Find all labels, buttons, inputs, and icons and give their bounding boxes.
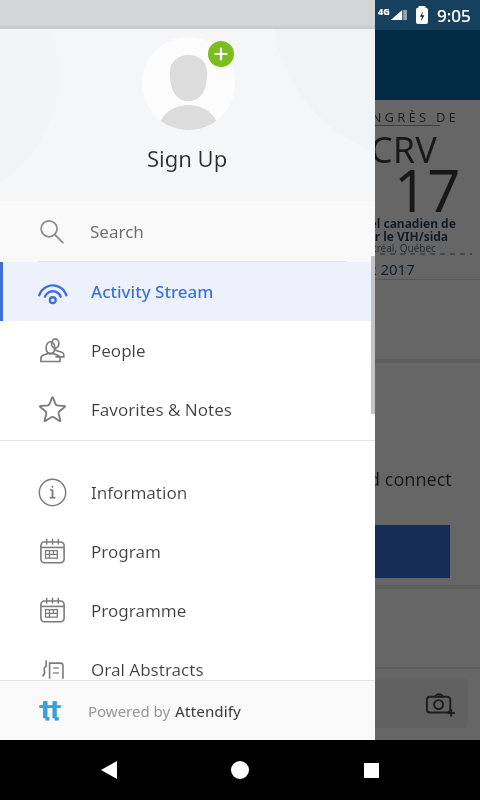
staticText: Oral Abstracts [91, 658, 204, 681]
button[interactable]: Sign Up [139, 140, 236, 176]
staticText: CONGRÈS DE [347, 108, 460, 126]
button[interactable]: Back [87, 748, 131, 792]
staticText: Favorites & Notes [91, 398, 232, 421]
button[interactable]: Powered by [0, 681, 375, 740]
staticText: 9:05 [437, 4, 471, 27]
staticText: Programme [91, 599, 187, 622]
button[interactable]: Oral Abstracts [0, 640, 375, 699]
staticText: recherche sur le VIH/sida [298, 228, 449, 244]
staticText: CAHR 2017 [337, 259, 415, 279]
button[interactable]: Recent apps [349, 748, 393, 792]
button[interactable]: Programme [0, 581, 375, 640]
button[interactable]: Information [0, 463, 375, 522]
staticText: Program [91, 540, 161, 563]
staticText: Attendify [175, 701, 241, 721]
staticText: 4G [378, 5, 390, 17]
staticText: CRV [370, 125, 437, 174]
staticText: Activity Stream [91, 280, 214, 303]
button[interactable]: Home [218, 748, 262, 792]
staticText: 17 [394, 150, 461, 229]
staticText: Powered by [88, 701, 175, 721]
button[interactable]: Add photo [421, 684, 461, 724]
staticText: Search [90, 220, 144, 243]
button[interactable]: Program [0, 522, 375, 581]
button[interactable]: Favorites & Notes [0, 380, 375, 439]
button[interactable] [290, 525, 450, 578]
staticText: Information [91, 481, 188, 504]
button[interactable] [14, 679, 468, 728]
staticText: People [91, 339, 146, 362]
staticText: Congrès annuel canadien de [287, 215, 456, 231]
button[interactable]: Profile picture [142, 37, 235, 130]
button[interactable]: Search [0, 201, 375, 262]
staticText: Sign Up [147, 143, 228, 173]
staticText: Meet and connect [300, 467, 452, 492]
button[interactable]: Activity Stream [0, 262, 375, 321]
button[interactable]: Add account [208, 41, 234, 67]
button[interactable]: People [0, 321, 375, 380]
staticText: 26 au 29 avril 2017 à Montréal, Québec [253, 241, 436, 255]
